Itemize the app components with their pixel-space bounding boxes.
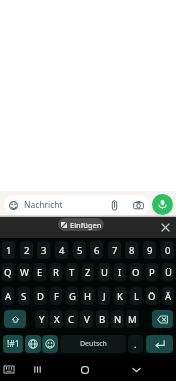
- button[interactable]: Ü: [162, 263, 174, 281]
- button[interactable]: Z: [82, 263, 94, 281]
- staticText: U: [101, 266, 108, 279]
- button[interactable]: S: [18, 287, 30, 305]
- staticText: Y: [39, 313, 45, 326]
- staticText: X: [54, 313, 60, 326]
- button[interactable]: .: [128, 335, 143, 353]
- button[interactable]: Q: [2, 263, 14, 281]
- staticText: G: [69, 290, 76, 303]
- staticText: T: [69, 266, 75, 279]
- button[interactable]: C: [65, 310, 78, 328]
- button[interactable]: Close suggestions: [159, 221, 172, 234]
- staticText: R: [53, 266, 59, 279]
- staticText: 9: [147, 244, 153, 257]
- staticText: A: [5, 290, 12, 303]
- button[interactable]: Backspace: [152, 310, 173, 328]
- button[interactable]: Nachricht: [4, 195, 150, 215]
- staticText: 0: [165, 244, 171, 257]
- staticText: .: [134, 338, 137, 350]
- button[interactable]: G: [66, 287, 78, 305]
- button[interactable]: U: [98, 263, 110, 281]
- staticText: 1: [6, 244, 12, 257]
- staticText: Z: [85, 266, 91, 279]
- button[interactable]: O: [130, 263, 142, 281]
- staticText: O: [132, 266, 140, 279]
- button[interactable]: Change language: [25, 335, 41, 353]
- staticText: B: [99, 313, 106, 326]
- button[interactable]: I: [114, 263, 126, 281]
- staticText: 5: [77, 244, 83, 257]
- button[interactable]: Einfügen: [58, 218, 104, 231]
- staticText: S: [21, 290, 27, 303]
- staticText: Ä: [165, 290, 172, 303]
- staticText: 7: [112, 244, 118, 257]
- button[interactable]: 9: [143, 241, 156, 259]
- button[interactable]: K: [114, 287, 126, 305]
- staticText: P: [149, 266, 155, 279]
- staticText: Ü: [165, 266, 172, 279]
- button[interactable]: B: [96, 310, 109, 328]
- staticText: K: [117, 290, 123, 303]
- button[interactable]: V: [80, 310, 93, 328]
- staticText: 6: [94, 244, 100, 257]
- staticText: H: [84, 290, 92, 303]
- staticText: Q: [4, 266, 12, 279]
- button[interactable]: 7: [108, 241, 121, 259]
- staticText: E: [37, 266, 43, 279]
- staticText: Einfügen: [70, 220, 102, 230]
- staticText: Ö: [148, 290, 156, 303]
- staticText: C: [68, 313, 75, 326]
- button[interactable]: Y: [35, 310, 48, 328]
- button[interactable]: R: [50, 263, 62, 281]
- button[interactable]: Ä: [162, 287, 174, 305]
- button[interactable]: 6: [90, 241, 103, 259]
- staticText: W: [20, 266, 29, 279]
- button[interactable]: Ö: [146, 287, 158, 305]
- staticText: !#1: [7, 338, 20, 350]
- button[interactable]: Emoji: [42, 335, 58, 353]
- staticText: 4: [59, 244, 65, 257]
- staticText: D: [37, 290, 44, 303]
- button[interactable]: N: [111, 310, 124, 328]
- button[interactable]: L: [130, 287, 142, 305]
- staticText: Nachricht: [24, 199, 63, 211]
- button[interactable]: 0: [161, 241, 174, 259]
- button[interactable]: Recent apps: [30, 358, 44, 381]
- button[interactable]: Voice message: [152, 194, 173, 215]
- button[interactable]: 4: [55, 241, 68, 259]
- button[interactable]: D: [34, 287, 46, 305]
- button[interactable]: X: [50, 310, 63, 328]
- button[interactable]: J: [98, 287, 110, 305]
- staticText: M: [128, 313, 137, 326]
- button[interactable]: H: [82, 287, 94, 305]
- button[interactable]: Enter: [146, 335, 173, 353]
- button[interactable]: 2: [20, 241, 33, 259]
- button[interactable]: W: [18, 263, 30, 281]
- staticText: 2: [24, 244, 30, 257]
- button[interactable]: 8: [125, 241, 138, 259]
- button[interactable]: Home: [78, 358, 92, 381]
- staticText: J: [103, 290, 106, 303]
- button[interactable]: M: [126, 310, 139, 328]
- staticText: I: [118, 266, 122, 279]
- button[interactable]: P: [146, 263, 158, 281]
- button[interactable]: T: [66, 263, 78, 281]
- staticText: Deutsch: [80, 339, 107, 349]
- button[interactable]: Shift: [4, 310, 26, 328]
- button[interactable]: Hide keyboard: [2, 358, 16, 381]
- button[interactable]: A: [2, 287, 14, 305]
- staticText: N: [114, 313, 122, 326]
- button[interactable]: 3: [37, 241, 50, 259]
- button[interactable]: Symbols: [3, 335, 23, 353]
- button[interactable]: 1: [2, 241, 15, 259]
- staticText: F: [54, 290, 59, 303]
- button[interactable]: 5: [73, 241, 86, 259]
- button[interactable]: Space: [60, 335, 126, 353]
- button[interactable]: Back: [129, 358, 143, 381]
- staticText: V: [84, 313, 90, 326]
- staticText: 3: [41, 244, 47, 257]
- button[interactable]: F: [50, 287, 62, 305]
- staticText: L: [134, 290, 139, 303]
- button[interactable]: E: [34, 263, 46, 281]
- staticText: 8: [129, 244, 135, 257]
